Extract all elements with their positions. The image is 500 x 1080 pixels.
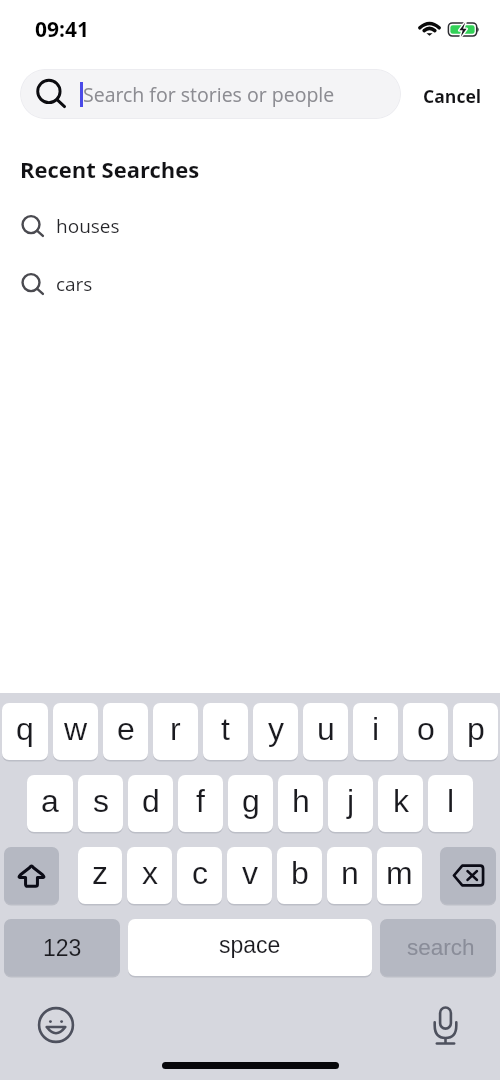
button[interactable]: q	[2, 703, 48, 760]
button[interactable]: b	[277, 847, 322, 904]
staticText: f	[196, 783, 205, 819]
staticText: n	[341, 855, 359, 891]
button[interactable]: Dictation	[421, 1001, 469, 1049]
staticText: h	[292, 783, 310, 819]
button[interactable]: u	[303, 703, 348, 760]
staticText: Recent Searches	[20, 154, 200, 184]
staticText: x	[142, 855, 158, 891]
staticText: y	[268, 711, 284, 747]
staticText: s	[93, 783, 109, 819]
staticText: v	[242, 855, 258, 891]
staticText: search	[407, 935, 475, 960]
staticText: j	[347, 783, 355, 819]
staticText: d	[142, 783, 160, 819]
button[interactable]: j	[328, 775, 373, 832]
staticText: o	[417, 711, 435, 747]
staticText: z	[92, 855, 108, 891]
staticText: t	[221, 711, 230, 747]
staticText: q	[16, 711, 34, 747]
button[interactable]: p	[453, 703, 498, 760]
staticText: cars	[56, 271, 93, 297]
button[interactable]: r	[153, 703, 198, 760]
staticText: w	[64, 711, 88, 747]
staticText: r	[170, 711, 181, 747]
button[interactable]: 123	[4, 919, 120, 976]
button[interactable]: d	[128, 775, 173, 832]
button[interactable]: v	[227, 847, 272, 904]
button[interactable]: m	[377, 847, 422, 904]
button[interactable]: cars	[0, 271, 500, 297]
button[interactable]: search	[380, 919, 496, 976]
button[interactable]: Emoji keyboard	[32, 1001, 80, 1049]
staticText: u	[317, 711, 335, 747]
button[interactable]: Search for stories or people	[20, 69, 401, 119]
button[interactable]: y	[253, 703, 298, 760]
staticText: i	[372, 711, 380, 747]
button[interactable]: x	[127, 847, 172, 904]
button[interactable]: houses	[0, 213, 500, 239]
button[interactable]: h	[278, 775, 323, 832]
staticText: l	[447, 783, 455, 819]
staticText: houses	[56, 213, 120, 239]
button[interactable]: Cancel	[403, 69, 500, 119]
staticText: Search for stories or people	[83, 81, 335, 108]
button[interactable]: n	[327, 847, 372, 904]
staticText: g	[242, 783, 260, 819]
button[interactable]: a	[27, 775, 73, 832]
button[interactable]: k	[378, 775, 423, 832]
staticText: k	[393, 783, 409, 819]
button[interactable]: w	[53, 703, 98, 760]
button[interactable]: f	[178, 775, 223, 832]
staticText: space	[219, 932, 281, 958]
staticText: Cancel	[423, 84, 482, 108]
button[interactable]: s	[78, 775, 123, 832]
button[interactable]: o	[403, 703, 448, 760]
staticText: 09:41	[35, 15, 89, 44]
staticText: m	[386, 855, 413, 891]
button[interactable]: e	[103, 703, 148, 760]
button[interactable]: g	[228, 775, 273, 832]
button[interactable]: t	[203, 703, 248, 760]
button[interactable]: i	[353, 703, 398, 760]
staticText: p	[467, 711, 485, 747]
staticText: e	[117, 711, 135, 747]
button[interactable]: l	[428, 775, 473, 832]
button[interactable]: Shift	[4, 847, 59, 904]
button[interactable]: Backspace	[440, 847, 496, 904]
button[interactable]: space	[128, 919, 372, 976]
staticText: b	[291, 855, 309, 891]
button[interactable]: z	[78, 847, 122, 904]
staticText: 123	[43, 935, 82, 961]
staticText: c	[192, 855, 208, 891]
button[interactable]: c	[177, 847, 222, 904]
staticText: a	[41, 783, 59, 819]
